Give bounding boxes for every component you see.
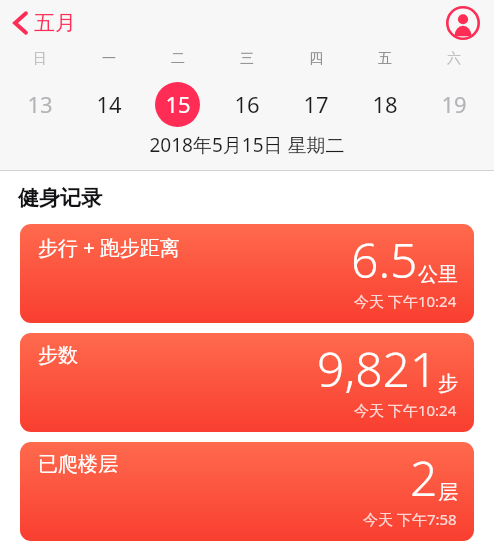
button[interactable]: Profile — [446, 6, 480, 40]
staticText: 层 — [438, 480, 458, 505]
button[interactable]: 步行 + 跑步距离 — [20, 224, 474, 323]
staticText: 14 — [96, 89, 122, 119]
staticText: 2018年5月15日 星期二 — [149, 132, 345, 158]
button[interactable]: 13 — [6, 81, 74, 127]
button[interactable]: 19 — [419, 81, 488, 127]
staticText: 健身记录 — [18, 185, 102, 211]
staticText: 18 — [372, 89, 398, 119]
staticText: 17 — [303, 89, 329, 119]
staticText: 步数 — [38, 343, 78, 368]
staticText: 步行 + 跑步距离 — [38, 234, 180, 261]
staticText: 15 — [165, 89, 191, 119]
button[interactable]: 16 — [212, 81, 281, 127]
button[interactable]: 18 — [350, 81, 419, 127]
staticText: 9,821 — [317, 336, 438, 401]
staticText: 五月 — [34, 10, 76, 36]
staticText: 三 — [240, 50, 254, 68]
staticText: 五 — [378, 50, 392, 68]
button[interactable]: 五月 — [10, 6, 80, 40]
staticText: 13 — [27, 89, 53, 119]
staticText: 6.5 — [351, 227, 418, 292]
staticText: 六 — [447, 50, 461, 68]
staticText: 二 — [171, 50, 185, 68]
button[interactable]: 17 — [281, 81, 350, 127]
staticText: 一 — [102, 50, 116, 68]
staticText: 2 — [410, 445, 438, 510]
staticText: 日 — [33, 50, 47, 68]
staticText: 步 — [438, 371, 458, 396]
staticText: 公里 — [418, 262, 458, 287]
button[interactable]: 步数 — [20, 333, 474, 432]
staticText: 16 — [234, 89, 260, 119]
staticText: 19 — [441, 89, 467, 119]
staticText: 今天 下午10:24 — [354, 400, 457, 420]
staticText: 已爬楼层 — [38, 452, 118, 477]
staticText: 今天 下午10:24 — [354, 291, 457, 311]
button[interactable]: 14 — [74, 81, 143, 127]
button[interactable]: 15 — [143, 81, 212, 127]
staticText: 四 — [309, 50, 323, 68]
staticText: 今天 下午7:58 — [363, 509, 457, 529]
button[interactable]: 已爬楼层 — [20, 442, 474, 541]
